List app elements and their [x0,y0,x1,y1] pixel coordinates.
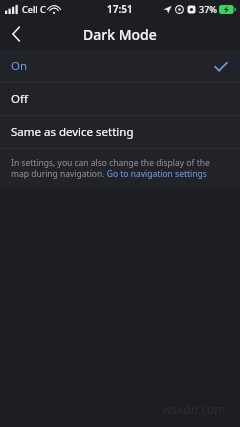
staticText: On [11,58,28,74]
staticText: 37% [199,3,217,15]
staticText: 17:51 [107,2,133,16]
staticText: Dark Mode [83,25,157,44]
button[interactable]: Back [0,18,32,50]
button[interactable]: On [0,50,240,82]
button[interactable]: In settings, you can also change the dis… [11,157,229,179]
staticText: wsxdn.com [162,401,226,417]
button[interactable]: Same as device setting [0,116,240,148]
staticText: Cell C [22,3,46,15]
staticText: Same as device setting [11,124,134,140]
button[interactable]: Off [0,83,240,115]
staticText: Off [11,91,28,107]
